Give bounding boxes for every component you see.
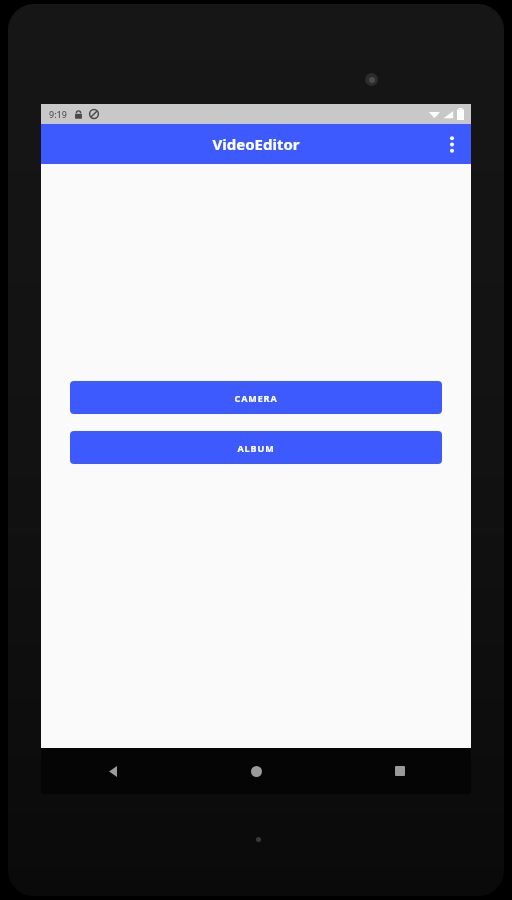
staticText: CAMERA [234, 392, 278, 404]
button[interactable]: CAMERA [70, 381, 442, 414]
staticText: 9:19 [49, 108, 67, 120]
staticText: VideoEditor [212, 134, 300, 154]
button[interactable]: More options [433, 124, 471, 164]
staticText: ALBUM [237, 442, 275, 454]
button[interactable]: ALBUM [70, 431, 442, 464]
button[interactable]: Back [41, 748, 185, 794]
button[interactable]: Recent apps [328, 748, 471, 794]
button[interactable]: Home [185, 748, 328, 794]
